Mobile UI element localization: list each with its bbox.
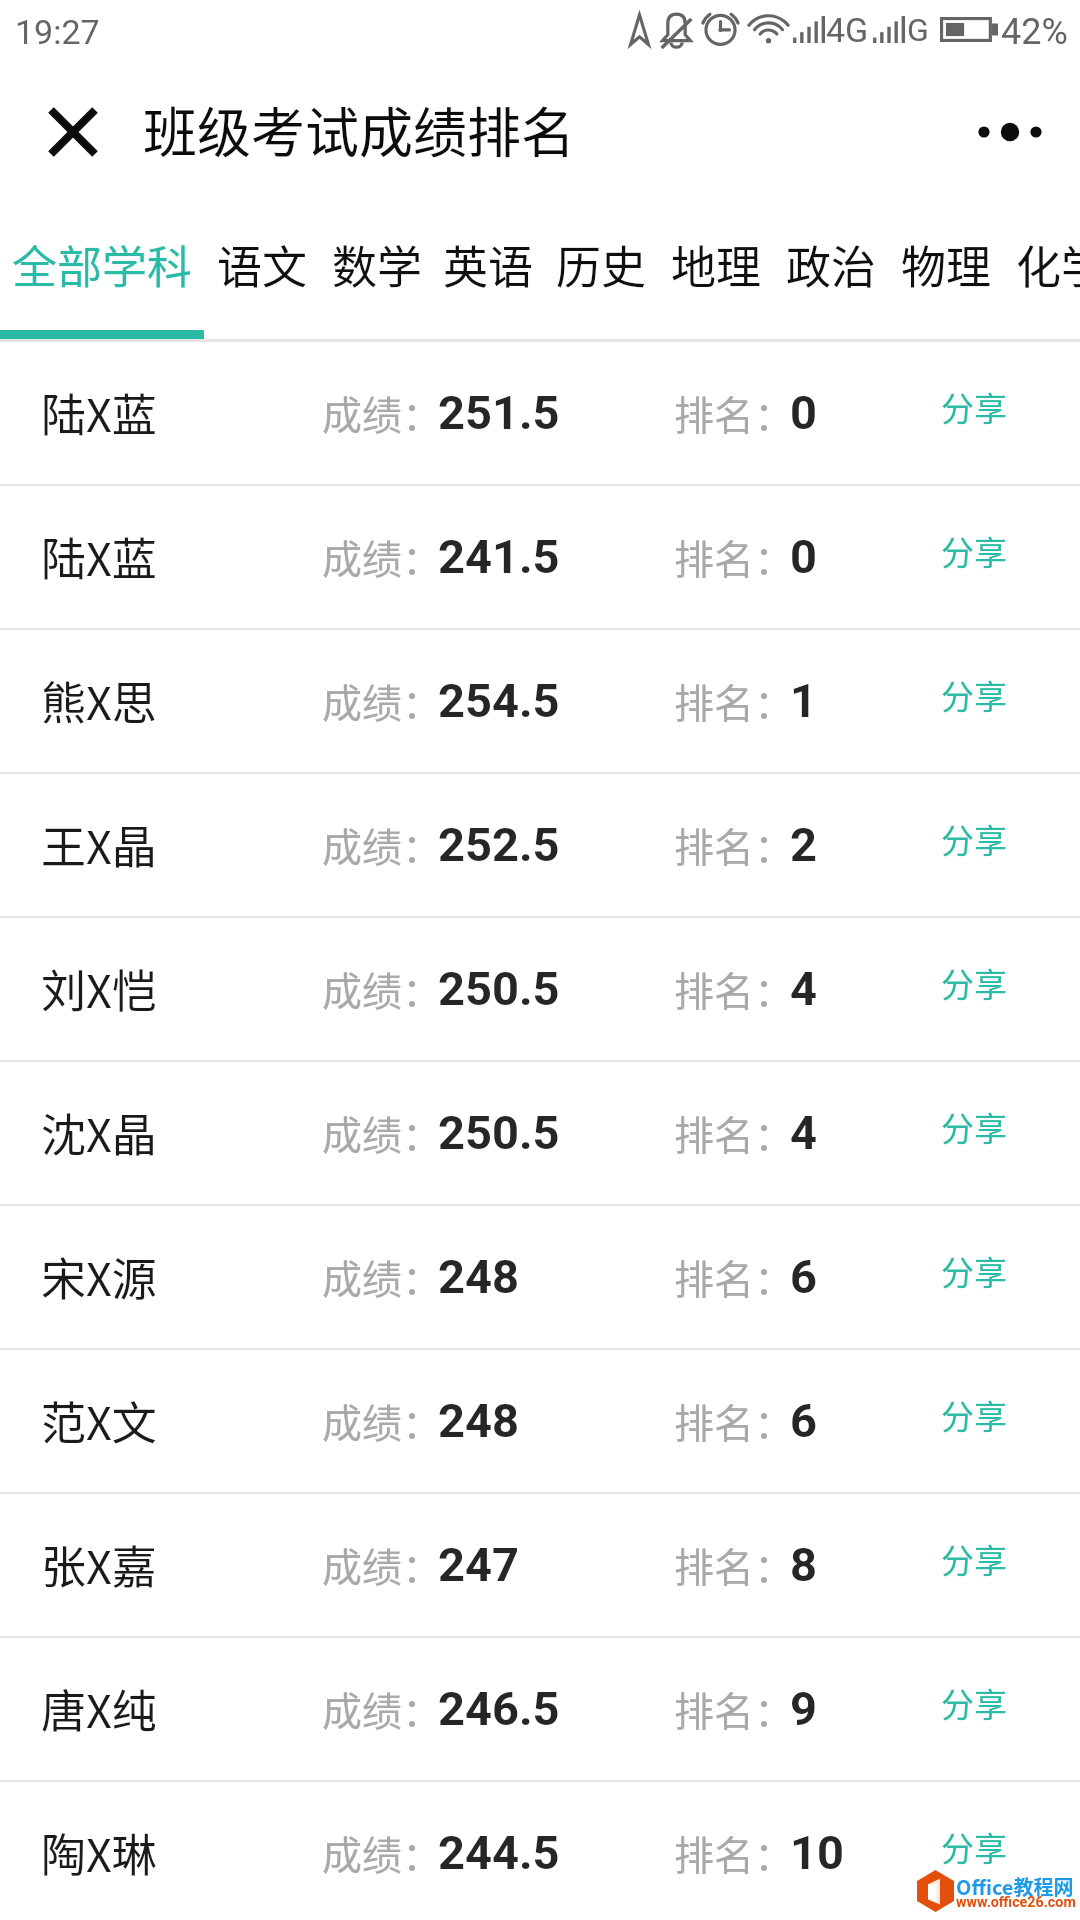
button[interactable]: 全部学科: [0, 191, 205, 337]
staticText: 244.5: [438, 1825, 560, 1880]
button[interactable]: 分享: [912, 1659, 1036, 1759]
button[interactable]: 陆X蓝: [0, 342, 1080, 484]
button[interactable]: 语文: [205, 191, 320, 337]
staticText: 成绩：: [322, 1248, 442, 1306]
staticText: 化学: [1016, 232, 1080, 297]
staticText: 成绩：: [322, 816, 442, 874]
staticText: 247: [438, 1537, 519, 1592]
staticText: 排名：: [674, 1680, 794, 1738]
staticText: 成绩：: [322, 672, 442, 730]
staticText: www.office26.com: [956, 1894, 1076, 1911]
staticText: 分享: [941, 1391, 1007, 1439]
staticText: 全部学科: [12, 232, 193, 297]
button[interactable]: 数学: [320, 191, 434, 337]
staticText: 成绩：: [322, 1824, 442, 1882]
button[interactable]: 宋X源: [0, 1206, 1080, 1348]
staticText: 6: [790, 1249, 817, 1304]
button[interactable]: 唐X纯: [0, 1638, 1080, 1780]
button[interactable]: 化学: [1004, 191, 1080, 337]
staticText: G: [907, 11, 929, 49]
button[interactable]: 分享: [912, 651, 1036, 751]
staticText: 排名：: [674, 1536, 794, 1594]
staticText: 254.5: [438, 673, 560, 728]
button[interactable]: 分享: [912, 939, 1036, 1039]
button[interactable]: More options: [960, 80, 1060, 184]
staticText: 分享: [941, 527, 1007, 575]
staticText: 历史: [556, 232, 647, 297]
button[interactable]: 分享: [912, 795, 1036, 895]
staticText: 排名：: [674, 672, 794, 730]
button[interactable]: 熊X思: [0, 630, 1080, 772]
staticText: 246.5: [438, 1681, 560, 1736]
staticText: 熊X思: [41, 668, 157, 733]
button[interactable]: 物理: [889, 191, 1004, 337]
staticText: 陆X蓝: [41, 524, 157, 589]
staticText: 成绩：: [322, 1680, 442, 1738]
staticText: 唐X纯: [41, 1676, 157, 1741]
staticText: 4: [790, 1105, 817, 1160]
staticText: 班级考试成绩排名: [143, 90, 575, 168]
staticText: 数学: [332, 232, 423, 297]
button[interactable]: 地理: [659, 191, 774, 337]
staticText: 排名：: [674, 816, 794, 874]
staticText: 刘X恺: [41, 956, 157, 1021]
staticText: 排名：: [674, 1392, 794, 1450]
button[interactable]: 分享: [912, 1227, 1036, 1327]
staticText: 9: [790, 1681, 817, 1736]
button[interactable]: 沈X晶: [0, 1062, 1080, 1204]
staticText: 2: [790, 817, 817, 872]
staticText: 陶X琳: [41, 1820, 157, 1885]
button[interactable]: 王X晶: [0, 774, 1080, 916]
button[interactable]: 陶X琳: [0, 1782, 1080, 1920]
button[interactable]: 陆X蓝: [0, 486, 1080, 628]
staticText: 成绩：: [322, 960, 442, 1018]
staticText: 范X文: [41, 1388, 157, 1453]
staticText: 1: [790, 673, 817, 728]
button[interactable]: 历史: [543, 191, 659, 337]
staticText: 王X晶: [41, 812, 157, 877]
staticText: 分享: [941, 959, 1007, 1007]
staticText: 251.5: [438, 385, 560, 440]
staticText: 成绩：: [322, 1392, 442, 1450]
button[interactable]: Close: [20, 80, 125, 184]
staticText: 分享: [941, 1535, 1007, 1583]
staticText: 排名：: [674, 1824, 794, 1882]
staticText: 6: [790, 1393, 817, 1448]
staticText: 分享: [941, 1679, 1007, 1727]
staticText: 政治: [786, 232, 877, 297]
staticText: 241.5: [438, 529, 560, 584]
staticText: 成绩：: [322, 384, 442, 442]
button[interactable]: 分享: [912, 363, 1036, 463]
staticText: 分享: [941, 1247, 1007, 1295]
staticText: Office教程网: [956, 1872, 1074, 1901]
staticText: 成绩：: [322, 1536, 442, 1594]
button[interactable]: 政治: [774, 191, 889, 337]
staticText: 沈X晶: [41, 1100, 157, 1165]
staticText: 10: [790, 1825, 844, 1880]
staticText: 英语: [443, 232, 534, 297]
staticText: 248: [438, 1249, 519, 1304]
button[interactable]: 分享: [912, 507, 1036, 607]
staticText: 250.5: [438, 961, 560, 1016]
staticText: 排名：: [674, 384, 794, 442]
button[interactable]: 分享: [912, 1371, 1036, 1471]
button[interactable]: 分享: [912, 1515, 1036, 1615]
staticText: 排名：: [674, 528, 794, 586]
button[interactable]: 分享: [912, 1803, 1036, 1903]
button[interactable]: 范X文: [0, 1350, 1080, 1492]
button[interactable]: 刘X恺: [0, 918, 1080, 1060]
staticText: 分享: [941, 1823, 1007, 1871]
staticText: 宋X源: [41, 1244, 157, 1309]
button[interactable]: 英语: [434, 191, 543, 337]
staticText: 42%: [1001, 11, 1068, 53]
staticText: 250.5: [438, 1105, 560, 1160]
staticText: 0: [790, 385, 817, 440]
staticText: 张X嘉: [41, 1532, 157, 1597]
button[interactable]: 分享: [912, 1083, 1036, 1183]
staticText: 8: [790, 1537, 817, 1592]
staticText: 语文: [217, 232, 308, 297]
staticText: 0: [790, 529, 817, 584]
button[interactable]: 张X嘉: [0, 1494, 1080, 1636]
staticText: 成绩：: [322, 528, 442, 586]
staticText: 物理: [901, 232, 992, 297]
